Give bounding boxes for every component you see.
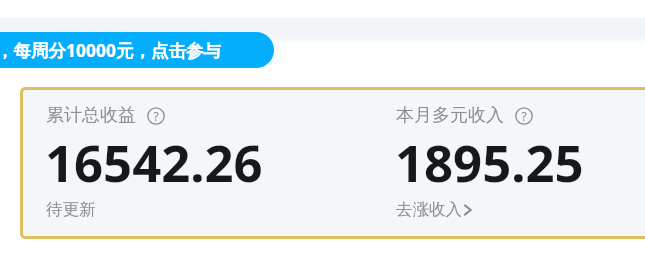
staticText: ? <box>153 108 159 124</box>
staticText: ? <box>521 108 527 124</box>
button[interactable]: 去涨收入 <box>396 199 474 220</box>
staticText: ，每周分10000元，点击参与 <box>0 38 222 62</box>
staticText: 去涨收入 <box>396 199 462 220</box>
staticText: 累计总收益 <box>46 104 136 127</box>
staticText: 1895.25 <box>395 128 584 197</box>
button[interactable]: ，每周分10000元，点击参与 <box>0 32 274 68</box>
staticText: 16542.26 <box>45 128 263 197</box>
staticText: 待更新 <box>46 199 96 220</box>
button[interactable]: Help <box>147 107 165 125</box>
staticText: 本月多元收入 <box>396 104 504 127</box>
button[interactable]: Help <box>515 107 533 125</box>
button[interactable]: 待更新 <box>46 199 96 220</box>
